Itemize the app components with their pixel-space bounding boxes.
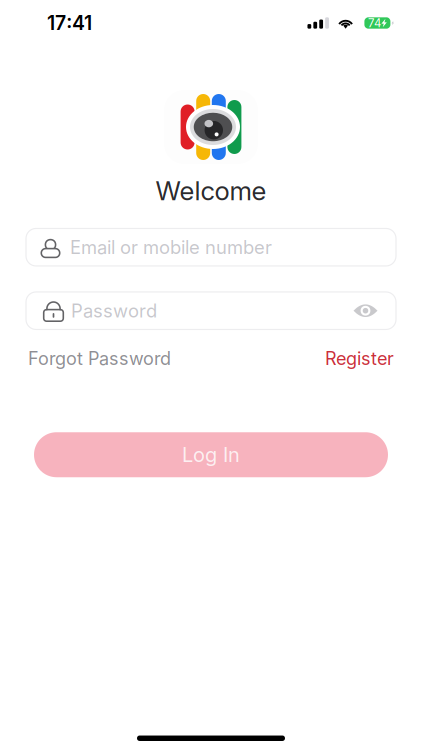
staticText: 17:41	[47, 11, 92, 35]
button[interactable]: Register	[325, 347, 394, 369]
staticText: 74	[368, 16, 381, 30]
staticText: Register	[325, 347, 394, 369]
staticText: Email or mobile number	[70, 236, 272, 258]
staticText: Welcome	[155, 175, 266, 206]
staticText: Forgot Password	[28, 347, 171, 369]
staticText: Password	[71, 300, 157, 322]
button[interactable]: Forgot Password	[28, 347, 171, 369]
button[interactable]: Show password	[339, 292, 392, 329]
button[interactable]: Log In	[34, 432, 388, 477]
staticText: Log In	[182, 443, 240, 467]
